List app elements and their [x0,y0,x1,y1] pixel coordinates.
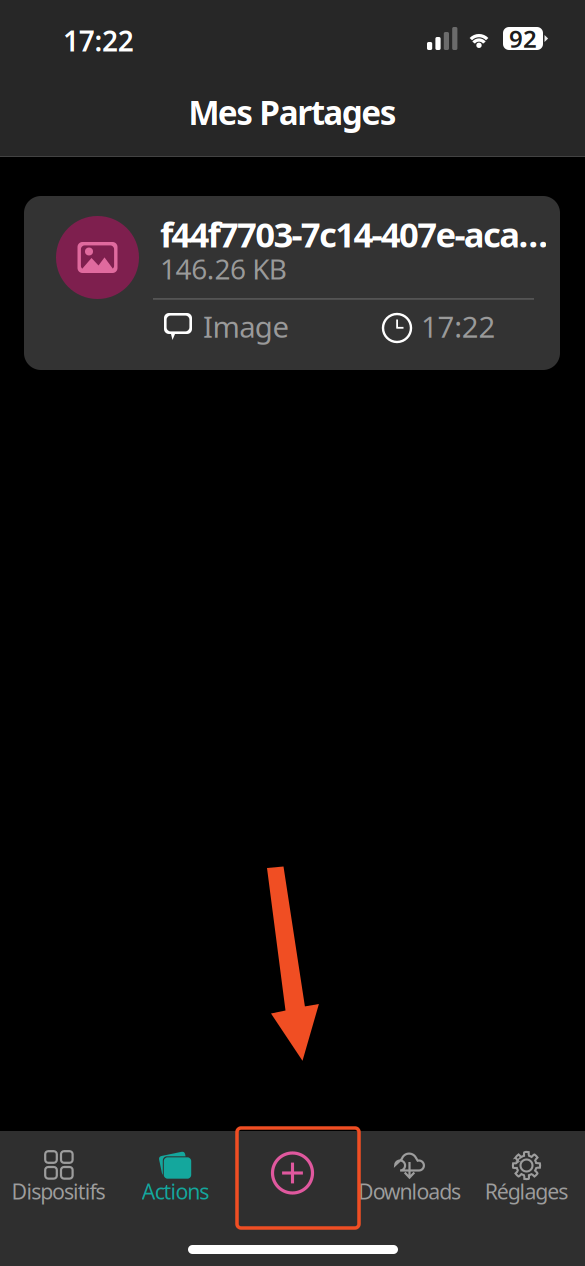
staticText: 146.26 KB [160,250,287,287]
staticText: Actions [142,1177,209,1205]
button[interactable]: Dispositifs [0,1135,117,1235]
staticText: Downloads [358,1177,461,1205]
staticText: 17:22 [63,22,134,59]
button[interactable]: Actions [117,1135,234,1235]
button[interactable]: Réglages [468,1135,585,1235]
staticText: f44f7703-7c14-407e-aca… [160,211,548,257]
staticText: 17:22 [421,307,495,346]
staticText: Image [203,307,289,346]
button[interactable]: Add [234,1135,351,1235]
button[interactable]: Downloads [351,1135,468,1235]
staticText: Mes Partages [188,90,397,134]
staticText: Réglages [485,1177,568,1205]
staticText: Dispositifs [11,1177,105,1205]
button[interactable]: f44f7703-7c14-407e-aca… [24,196,560,370]
staticText: 92 [509,23,537,54]
